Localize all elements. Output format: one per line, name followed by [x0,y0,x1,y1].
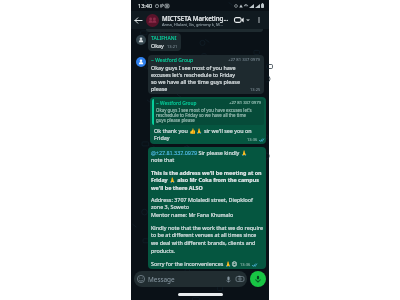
button[interactable]: Voice message [250,271,266,287]
button[interactable]: ~ Westford Group [150,97,266,144]
staticText: TALIFHANI [151,35,177,42]
staticText: 13:36 [247,137,258,142]
staticText: This is the address we'll be meeting at … [151,169,262,192]
staticText: Okay guys I see most of you have excuses… [156,107,252,123]
button[interactable]: TALIFHANI [148,33,181,51]
staticText: 13:36 [240,262,251,267]
staticText: Kindly note that the work that we do req… [151,224,263,255]
staticText: Okay [151,42,164,49]
staticText: Address: 3707 Molaledi street, Diepkloof… [151,196,253,219]
button[interactable]: Back [133,15,144,26]
staticText: 13:21 [167,44,178,49]
staticText: ~ Westford Group [156,100,197,107]
button[interactable]: @+27 81 337 0979 Sir please kindly 🙏 not… [148,147,266,269]
staticText: 13:25 [250,87,261,92]
staticText: ~ Westford Group [151,57,194,64]
staticText: @+27 81 337 0979 Sir please kindly 🙏 not… [151,149,248,164]
button[interactable]: Message [134,271,247,287]
staticText: Anna, Hlulani, Its, grimmy k, M... [162,22,223,27]
staticText: Ok thank you 👍🙏 sir we'll see you on Fri… [154,127,252,142]
button[interactable]: Video call [234,16,250,24]
staticText: +27 81 337 0979 [228,57,261,63]
staticText: Okay guys I see most of you have excuses… [151,64,240,92]
staticText: +27 81 337 0979 [229,100,262,106]
button[interactable]: ~ Westford Group [148,55,264,94]
staticText: Message [148,275,175,284]
button[interactable]: More options [255,16,263,24]
staticText: 13:40 [138,2,153,9]
staticText: Sorry for the inconveniences 🙏😊 [151,260,238,267]
staticText: MICTSETA Marketing... [162,14,229,22]
